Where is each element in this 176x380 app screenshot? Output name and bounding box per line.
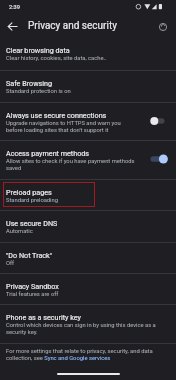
staticText: Allow sites to check if you have payment…	[6, 158, 135, 172]
button[interactable]: Access payment methods	[0, 141, 176, 179]
staticText: 2:39	[9, 4, 20, 11]
button[interactable]: Back	[0, 14, 24, 38]
staticText: Control which devices can sign in by usi…	[6, 322, 172, 336]
button[interactable]: Always use secure connections	[0, 103, 176, 140]
staticText: Always use secure connections	[6, 111, 107, 119]
button[interactable]: Privacy Sandbox	[0, 274, 176, 304]
staticText: Upgrade navigations to HTTPS and warn yo…	[6, 120, 135, 134]
staticText: Access payment methods	[6, 149, 90, 157]
staticText: For more settings that relate to privacy…	[6, 348, 172, 362]
button[interactable]: Clear browsing data	[0, 38, 176, 70]
button[interactable]: Use secure DNS	[0, 211, 176, 242]
staticText: Standard preloading	[6, 197, 58, 204]
button[interactable]: "Do Not Track"	[0, 243, 176, 273]
button[interactable]: Preload pages	[0, 180, 176, 210]
button[interactable]: Help	[152, 16, 173, 37]
staticText: Clear browsing data	[6, 46, 70, 54]
staticText: Use secure DNS	[6, 219, 58, 227]
staticText: Phone as a security key	[6, 313, 81, 321]
staticText: Off	[6, 260, 15, 267]
button[interactable]: Safe Browsing	[0, 71, 176, 102]
staticText: Trial features are off	[6, 291, 59, 298]
staticText: Clear history, cookies, site data, cache…	[6, 55, 107, 62]
staticText: Privacy Sandbox	[6, 282, 59, 290]
staticText: Automatic	[6, 228, 33, 235]
button[interactable]: Phone as a security key	[0, 305, 176, 343]
staticText: Safe Browsing	[6, 79, 52, 87]
staticText: Privacy and security	[28, 20, 117, 32]
staticText: Standard protection is on	[6, 88, 71, 95]
staticText: "Do Not Track"	[6, 251, 53, 259]
staticText: Preload pages	[6, 188, 52, 196]
